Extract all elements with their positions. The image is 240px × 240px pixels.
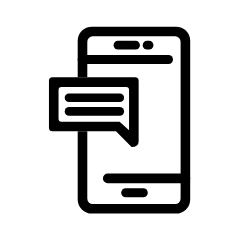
button[interactable]: Mobile chat message bbox=[0, 0, 240, 240]
